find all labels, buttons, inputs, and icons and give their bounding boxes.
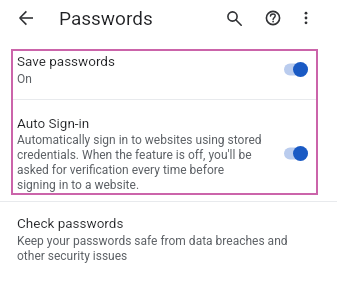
button[interactable]: Help: [257, 2, 289, 34]
staticText: Check passwords: [17, 215, 124, 231]
staticText: Save passwords: [17, 53, 115, 69]
staticText: On: [17, 72, 32, 86]
button[interactable]: Toggle: [284, 146, 308, 161]
button[interactable]: Search: [218, 2, 250, 34]
button[interactable]: Check passwords: [0, 215, 337, 263]
staticText: Passwords: [59, 7, 153, 29]
button[interactable]: Toggle: [284, 62, 308, 77]
staticText: Auto Sign-in: [17, 115, 90, 131]
button[interactable]: Back: [8, 0, 44, 36]
staticText: Automatically sign in to websites using …: [17, 133, 265, 192]
button[interactable]: Auto Sign-in: [11, 100, 318, 195]
button[interactable]: Save passwords: [11, 49, 318, 99]
staticText: Keep your passwords safe from data breac…: [17, 234, 292, 263]
button[interactable]: More options: [291, 3, 321, 33]
